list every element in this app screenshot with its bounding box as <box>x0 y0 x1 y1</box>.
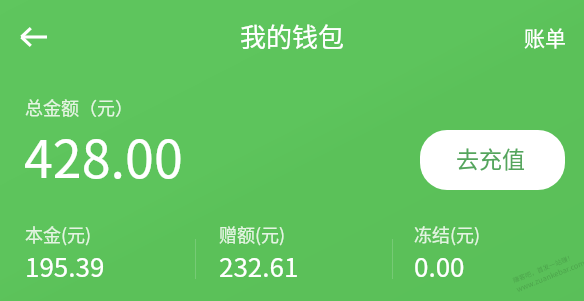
staticText: 赠额(元) <box>219 221 286 247</box>
staticText: 总金额（元） <box>25 94 133 120</box>
staticText: 195.39 <box>25 247 105 285</box>
staticText: 本金(元) <box>25 221 92 247</box>
staticText: 去充值 <box>456 141 525 174</box>
staticText: 赚客吧，首发一站赚！ <box>511 251 574 284</box>
button[interactable]: 账单 <box>505 8 584 66</box>
staticText: 0.00 <box>414 247 465 285</box>
staticText: 428.00 <box>24 118 183 193</box>
staticText: 账单 <box>524 22 566 52</box>
staticText: 我的钱包 <box>240 17 345 55</box>
staticText: 冻结(元) <box>414 221 481 247</box>
staticText: 232.61 <box>219 247 299 285</box>
button[interactable]: 去充值 <box>420 130 565 190</box>
button[interactable]: Back <box>6 10 60 64</box>
staticText: www.zuankebar.com <box>514 256 584 294</box>
